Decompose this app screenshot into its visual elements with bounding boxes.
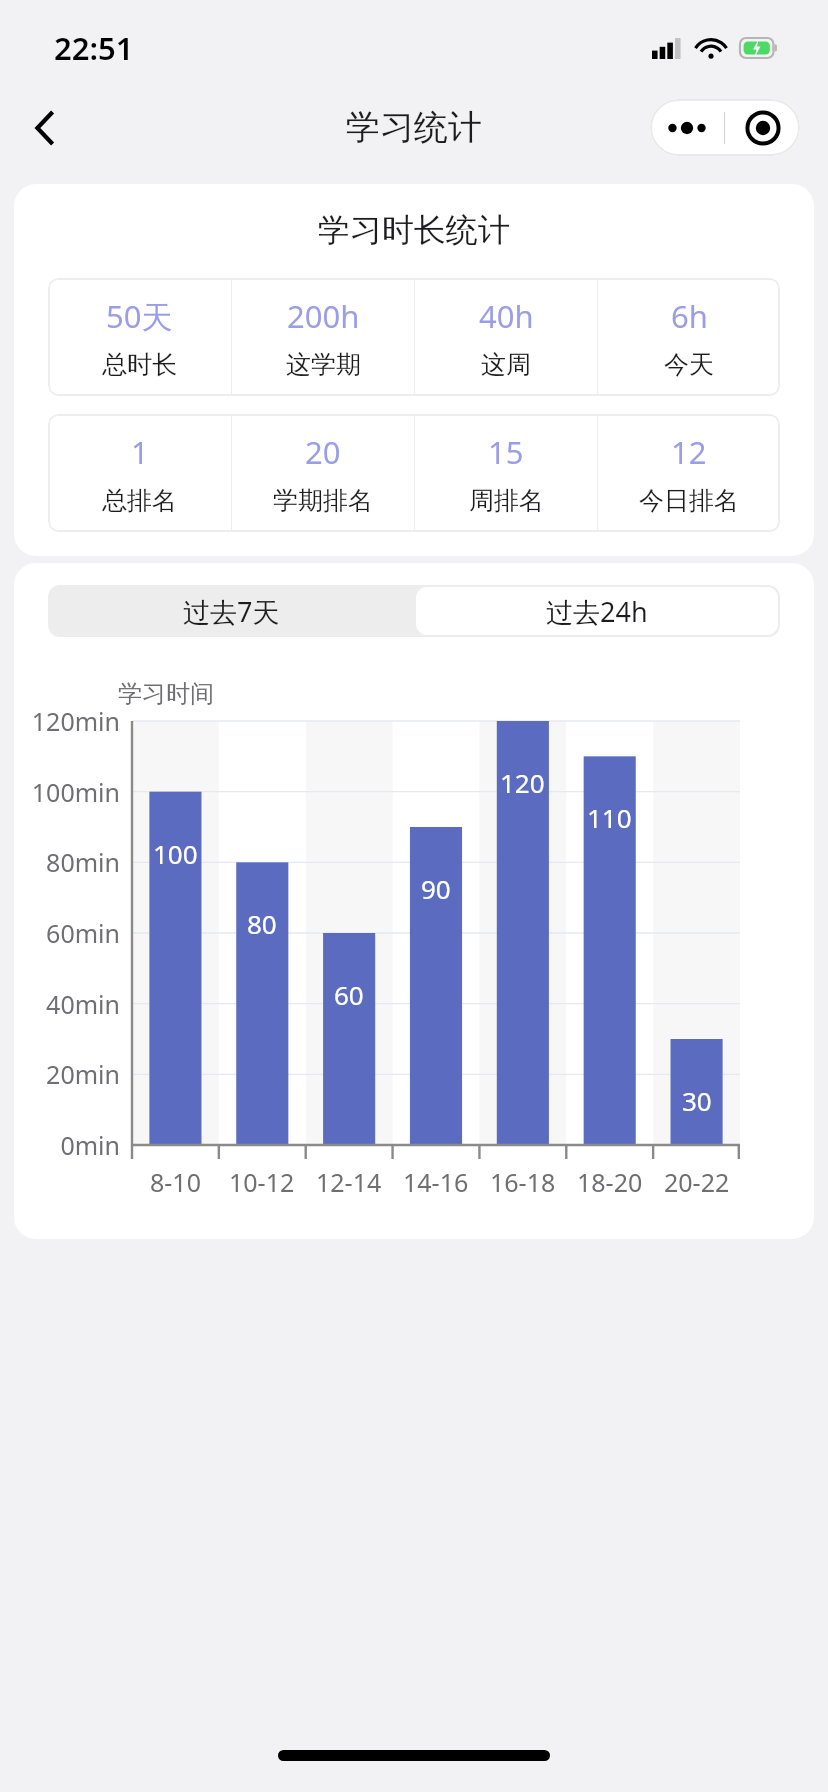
staticText: 总排名 xyxy=(102,485,177,516)
staticText: 110 xyxy=(587,800,632,835)
staticText: 60 xyxy=(334,977,364,1012)
staticText: 120 xyxy=(500,765,545,800)
staticText: 12-14 xyxy=(316,1165,382,1199)
button[interactable]: Close xyxy=(725,99,800,156)
staticText: 学习时长统计 xyxy=(14,210,814,250)
button[interactable]: 15 xyxy=(415,414,597,532)
button[interactable]: 20 xyxy=(232,414,414,532)
button[interactable]: 50天 xyxy=(48,278,231,396)
staticText: 学习时间 xyxy=(118,679,214,709)
staticText: 学期排名 xyxy=(273,485,373,516)
staticText: 40h xyxy=(479,295,534,337)
staticText: 14-16 xyxy=(403,1165,469,1199)
staticText: 100min xyxy=(14,775,120,809)
staticText: 今天 xyxy=(664,349,714,380)
button[interactable]: 12 xyxy=(598,414,780,532)
staticText: 80min xyxy=(14,845,120,879)
staticText: 15 xyxy=(488,431,524,473)
staticText: 20min xyxy=(14,1057,120,1091)
button[interactable]: More options xyxy=(650,99,724,156)
staticText: 50天 xyxy=(106,295,173,337)
staticText: 200h xyxy=(287,295,360,337)
button[interactable]: Back xyxy=(16,99,74,157)
staticText: 这学期 xyxy=(286,349,361,380)
staticText: 16-18 xyxy=(490,1165,556,1199)
button[interactable]: 200h xyxy=(232,278,414,396)
staticText: 20-22 xyxy=(664,1165,730,1199)
staticText: 90 xyxy=(421,871,451,906)
button[interactable]: 6h xyxy=(598,278,780,396)
staticText: 18-20 xyxy=(577,1165,643,1199)
staticText: 0min xyxy=(14,1128,120,1162)
button[interactable]: 过去7天 xyxy=(48,585,414,637)
staticText: 120min xyxy=(14,704,120,738)
staticText: 20 xyxy=(305,431,341,473)
staticText: 40min xyxy=(14,987,120,1021)
staticText: 10-12 xyxy=(229,1165,295,1199)
staticText: 过去24h xyxy=(546,593,648,630)
staticText: 今日排名 xyxy=(639,485,739,516)
staticText: 60min xyxy=(14,916,120,950)
staticText: 1 xyxy=(131,431,149,473)
button[interactable]: 过去24h xyxy=(416,587,778,635)
staticText: 这周 xyxy=(481,349,531,380)
button[interactable]: 40h xyxy=(415,278,597,396)
button[interactable]: 1 xyxy=(48,414,231,532)
staticText: 22:51 xyxy=(54,27,134,69)
staticText: 过去7天 xyxy=(183,593,280,630)
staticText: 学习统计 xyxy=(346,106,482,149)
staticText: 6h xyxy=(671,295,708,337)
staticText: 周排名 xyxy=(469,485,544,516)
staticText: 80 xyxy=(247,906,277,941)
staticText: 12 xyxy=(671,431,707,473)
staticText: 30 xyxy=(682,1083,712,1118)
staticText: 8-10 xyxy=(150,1165,201,1199)
staticText: 100 xyxy=(153,836,198,871)
staticText: 总时长 xyxy=(102,349,177,380)
